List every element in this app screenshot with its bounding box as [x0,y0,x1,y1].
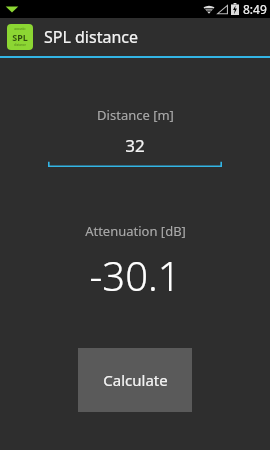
staticText: acoustic [14,27,26,31]
staticText: Calculate [103,370,168,390]
button[interactable]: acoustic [0,18,270,56]
staticText: Attenuation [dB] [85,222,186,240]
staticText: Distance [m] [97,106,174,124]
staticText: -30.1 [89,248,181,302]
staticText: distance [14,43,26,47]
staticText: 32 [125,134,145,157]
staticText: 8:49 [243,1,267,17]
staticText: SPL [12,31,28,43]
button[interactable]: Calculate [78,348,192,412]
button[interactable]: 32 [48,134,222,167]
staticText: SPL distance [44,26,138,48]
